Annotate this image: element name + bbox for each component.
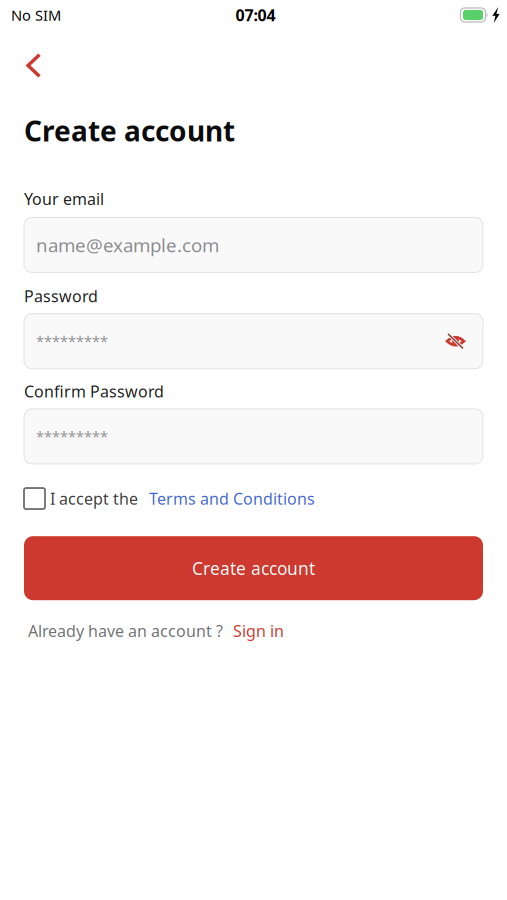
staticText: Create account bbox=[192, 557, 315, 580]
staticText: No SIM bbox=[11, 5, 61, 25]
button[interactable]: Already have an account ? bbox=[24, 600, 483, 649]
staticText: Sign in bbox=[233, 620, 284, 641]
staticText: ********* bbox=[36, 331, 108, 351]
staticText: Create account bbox=[24, 112, 235, 149]
staticText: 07:04 bbox=[235, 4, 275, 26]
staticText: Password bbox=[24, 285, 98, 307]
button[interactable]: Confirm Password bbox=[24, 409, 483, 464]
staticText: Terms and Conditions bbox=[149, 488, 315, 509]
staticText: Your email bbox=[24, 188, 104, 209]
staticText: Confirm Password bbox=[24, 381, 164, 402]
staticText: I accept the bbox=[50, 488, 138, 509]
staticText: ********* bbox=[36, 427, 108, 446]
button[interactable]: Password bbox=[24, 314, 483, 369]
button[interactable]: I accept the bbox=[24, 464, 483, 518]
staticText: Already have an account ? bbox=[28, 620, 223, 641]
button[interactable]: Create account bbox=[24, 536, 483, 600]
staticText: name@example.com bbox=[36, 232, 219, 257]
button[interactable]: Your email bbox=[24, 217, 483, 272]
button[interactable]: Back bbox=[0, 30, 56, 90]
